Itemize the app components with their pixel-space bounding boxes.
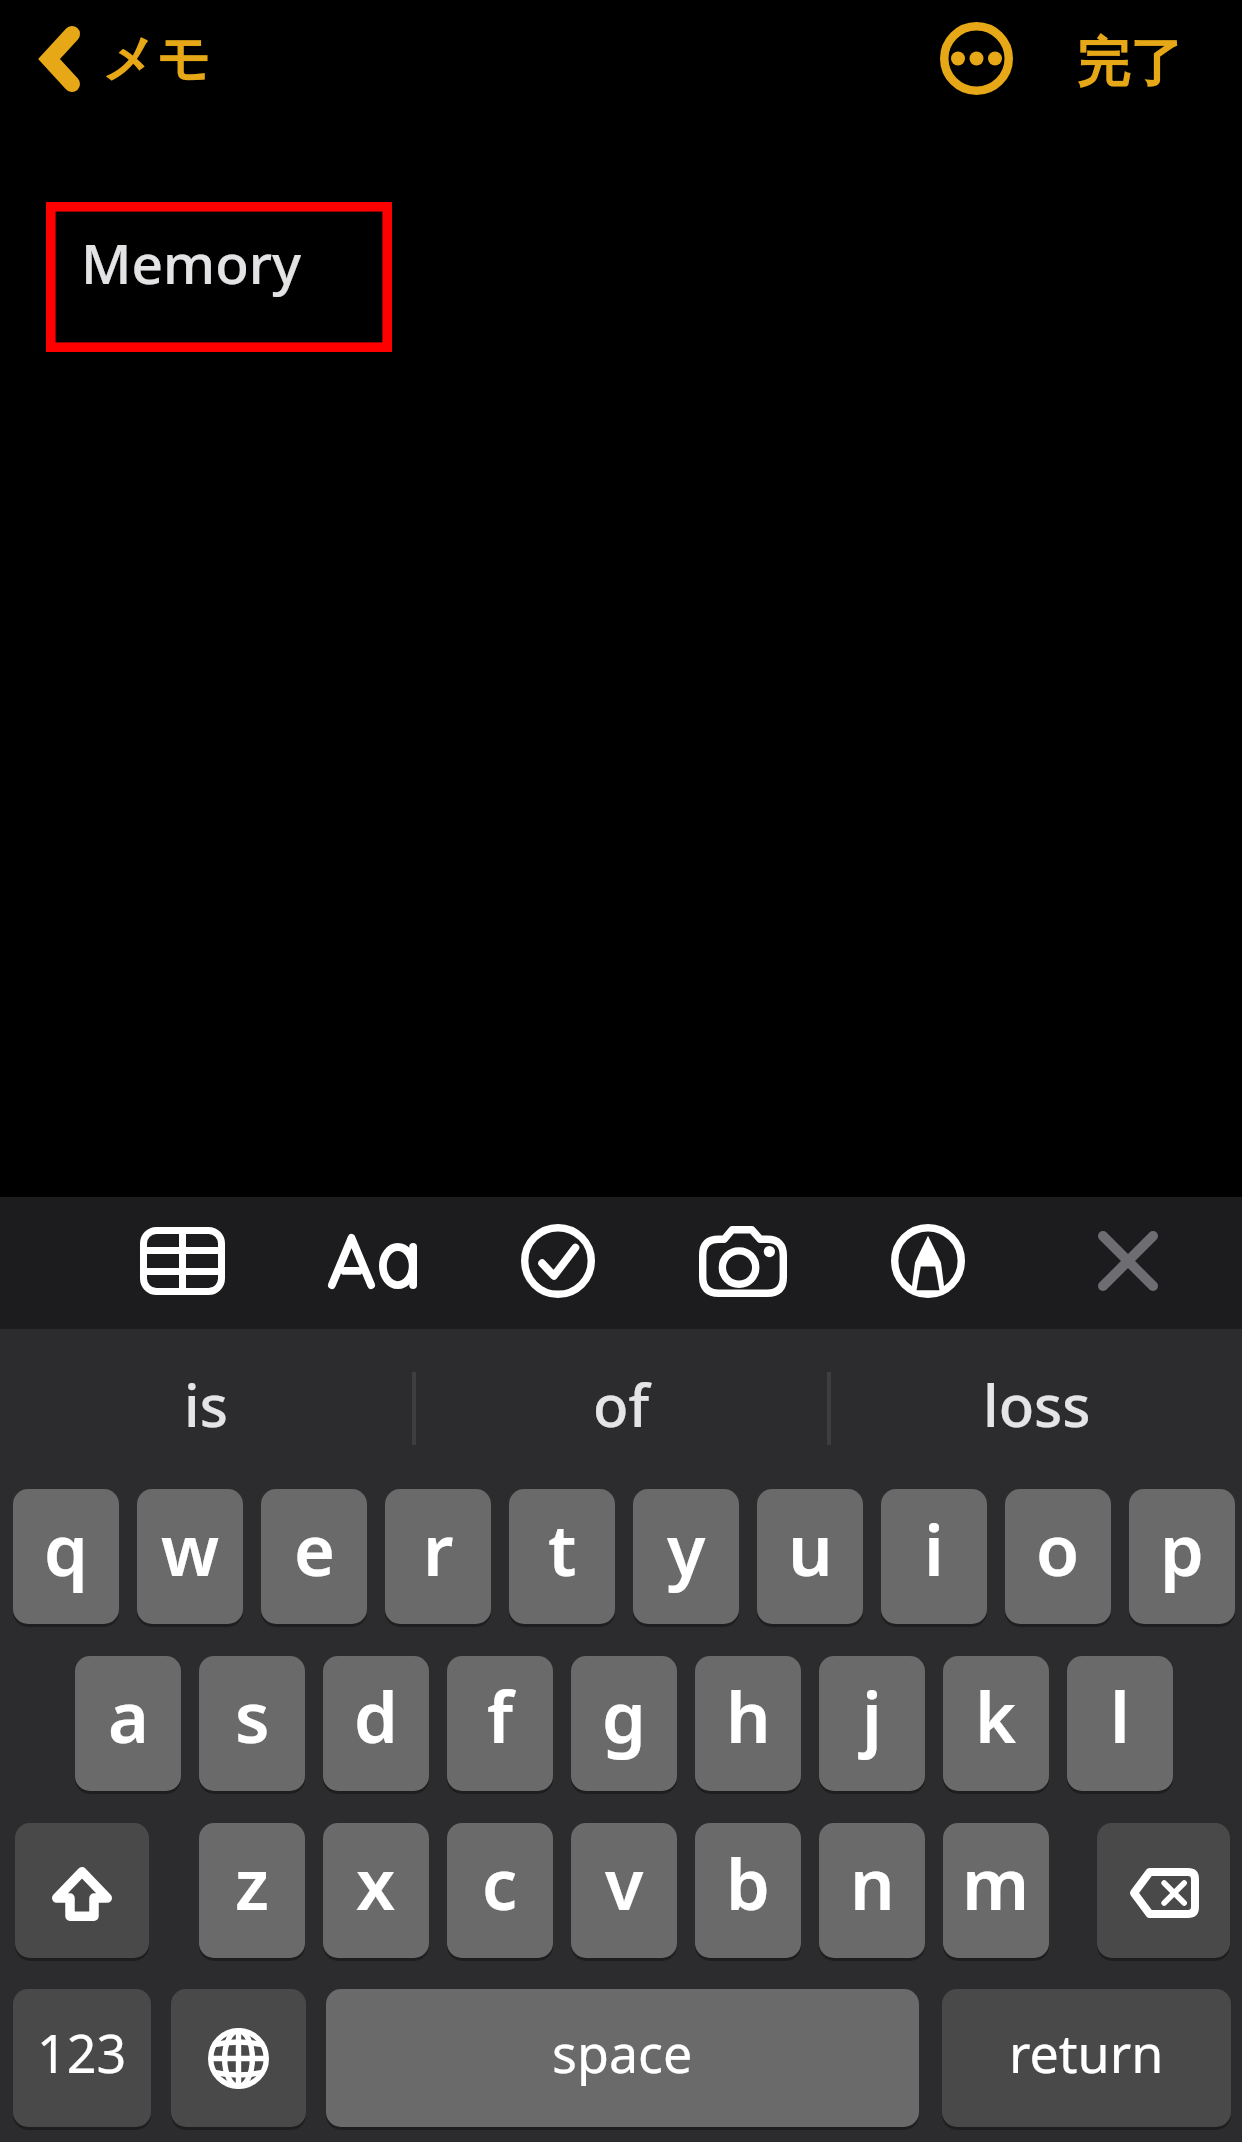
staticText: x — [356, 1835, 396, 1930]
staticText: of — [593, 1365, 650, 1444]
staticText: 123 — [37, 2017, 127, 2088]
staticText: n — [850, 1835, 895, 1930]
button[interactable]: Shift — [15, 1823, 149, 1958]
button[interactable]: u — [757, 1489, 863, 1624]
button[interactable]: Backspace — [1097, 1823, 1230, 1958]
button[interactable]: m — [943, 1823, 1049, 1958]
button[interactable]: 完了 — [1063, 16, 1197, 111]
button[interactable]: o — [1005, 1489, 1111, 1624]
staticText: i — [924, 1501, 944, 1596]
staticText: space — [552, 2017, 693, 2088]
button[interactable]: c — [447, 1823, 553, 1958]
button[interactable]: v — [571, 1823, 677, 1958]
staticText: Memory — [81, 225, 302, 300]
staticText: e — [294, 1501, 335, 1596]
staticText: a — [108, 1668, 149, 1763]
staticText: j — [862, 1668, 882, 1763]
button[interactable]: Camera — [688, 1206, 798, 1316]
staticText: q — [44, 1501, 88, 1596]
staticText: l — [1110, 1668, 1130, 1763]
button[interactable]: g — [571, 1656, 677, 1791]
staticText: d — [354, 1668, 398, 1763]
button[interactable]: space — [326, 1989, 919, 2127]
staticText: p — [1160, 1501, 1204, 1596]
staticText: u — [788, 1501, 833, 1596]
button[interactable]: メモ — [20, 16, 227, 101]
button[interactable]: 123 — [13, 1989, 151, 2127]
staticText: c — [482, 1835, 518, 1930]
staticText: g — [602, 1668, 646, 1763]
staticText: is — [184, 1365, 228, 1444]
button[interactable]: j — [819, 1656, 925, 1791]
staticText: b — [726, 1835, 770, 1930]
staticText: h — [726, 1668, 771, 1763]
staticText: r — [423, 1501, 454, 1596]
button[interactable]: Markup — [873, 1206, 983, 1316]
button[interactable]: i — [881, 1489, 987, 1624]
staticText: z — [235, 1835, 269, 1930]
button[interactable]: return — [942, 1989, 1231, 2127]
staticText: f — [487, 1668, 513, 1763]
button[interactable]: q — [13, 1489, 119, 1624]
button[interactable]: y — [633, 1489, 739, 1624]
button[interactable]: t — [509, 1489, 615, 1624]
button[interactable]: z — [199, 1823, 305, 1958]
button[interactable]: s — [199, 1656, 305, 1791]
button[interactable]: Insert table — [127, 1206, 237, 1316]
button[interactable]: p — [1129, 1489, 1235, 1624]
button[interactable]: Hide keyboard — [1073, 1206, 1183, 1316]
button[interactable]: w — [137, 1489, 243, 1624]
staticText: k — [975, 1668, 1017, 1763]
staticText: メモ — [102, 26, 211, 93]
staticText: t — [548, 1501, 577, 1596]
button[interactable]: a — [75, 1656, 181, 1791]
staticText: y — [667, 1501, 706, 1596]
button[interactable]: Switch keyboard — [171, 1989, 306, 2127]
button[interactable]: e — [261, 1489, 367, 1624]
staticText: o — [1036, 1501, 1080, 1596]
staticText: s — [235, 1668, 270, 1763]
staticText: loss — [983, 1365, 1091, 1444]
button[interactable]: x — [323, 1823, 429, 1958]
button[interactable]: k — [943, 1656, 1049, 1791]
staticText: return — [1009, 2017, 1164, 2088]
button[interactable]: is — [0, 1329, 412, 1488]
button[interactable]: b — [695, 1823, 801, 1958]
button[interactable]: n — [819, 1823, 925, 1958]
button[interactable]: More options — [929, 11, 1024, 106]
button[interactable]: h — [695, 1656, 801, 1791]
staticText: m — [962, 1835, 1030, 1930]
button[interactable]: loss — [831, 1329, 1242, 1488]
button[interactable]: r — [385, 1489, 491, 1624]
button[interactable]: of — [416, 1329, 827, 1488]
staticText: v — [605, 1835, 644, 1930]
button[interactable]: l — [1067, 1656, 1173, 1791]
button[interactable]: Checklist — [503, 1206, 613, 1316]
staticText: w — [161, 1501, 220, 1596]
staticText: 完了 — [1077, 30, 1183, 97]
button[interactable]: d — [323, 1656, 429, 1791]
button[interactable]: Format text — [318, 1206, 428, 1316]
button[interactable]: f — [447, 1656, 553, 1791]
